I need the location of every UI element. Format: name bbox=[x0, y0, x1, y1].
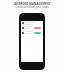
staticText: ANDROID MANAGEMENT bbox=[14, 2, 51, 6]
button[interactable] bbox=[21, 21, 43, 25]
button[interactable] bbox=[21, 25, 43, 30]
button[interactable] bbox=[21, 30, 43, 35]
staticText: Create and track your tasks bbox=[15, 5, 49, 9]
